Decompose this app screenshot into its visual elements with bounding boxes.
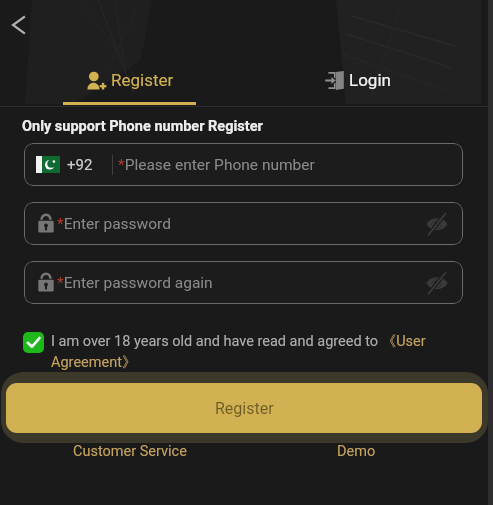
button[interactable]: Show password [420,207,454,241]
staticText: *Enter password [57,215,171,233]
staticText: Login [349,70,391,90]
button[interactable]: Register [6,383,482,433]
button[interactable]: Register [17,53,244,107]
staticText: Customer Service [73,443,187,460]
button[interactable]: Demo [337,443,376,460]
staticText: *Please enter Phone number [118,156,315,174]
button[interactable]: I am over 18 checkbox [23,332,44,353]
button[interactable]: Show password [420,266,454,300]
staticText: I am over 18 years old and have read and… [51,332,467,371]
button[interactable]: +92 [24,143,463,186]
button[interactable]: *Enter password [24,202,463,245]
button[interactable]: *Enter password again [24,261,463,304]
staticText: Register [215,399,274,418]
staticText: Register [111,70,174,90]
button[interactable]: Login [244,53,471,107]
button[interactable]: Customer Service [73,443,187,460]
staticText: *Enter password again [57,274,213,292]
button[interactable]: Back [1,8,35,42]
staticText: Demo [337,443,376,460]
staticText: +92 [67,156,93,174]
staticText: Only support Phone number Register [22,118,263,135]
